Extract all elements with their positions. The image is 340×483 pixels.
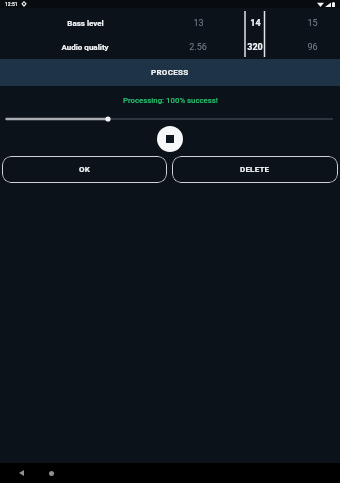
button[interactable]: 13 (178, 17, 218, 29)
button[interactable]: 14 (235, 17, 275, 29)
staticText: 96 (307, 42, 318, 53)
button[interactable]: Bass level (55, 17, 115, 29)
staticText: 14 (250, 18, 261, 29)
staticText: DELETE (240, 165, 270, 174)
button[interactable]: PROCESS (0, 59, 340, 86)
staticText: 12:51 (5, 1, 18, 7)
button[interactable]: 320 (235, 41, 275, 53)
staticText: 320 (247, 42, 263, 53)
staticText: PROCESS (151, 68, 189, 77)
staticText: 15 (307, 18, 318, 29)
button[interactable]: 15 (292, 17, 332, 29)
button[interactable]: 2.56 (178, 41, 218, 53)
staticText: 13 (193, 18, 204, 29)
button[interactable]: 96 (292, 41, 332, 53)
button[interactable]: DELETE (172, 156, 338, 183)
staticText: Processing: 100% success! (123, 96, 218, 105)
staticText: OK (79, 165, 91, 174)
staticText: 2.56 (189, 42, 207, 53)
button[interactable]: Home (43, 465, 59, 481)
button[interactable]: Stop (157, 126, 183, 152)
button[interactable]: OK (2, 156, 167, 183)
staticText: Bass level (67, 19, 104, 28)
staticText: Audio quality (61, 43, 109, 52)
button[interactable]: Back (13, 465, 29, 481)
button[interactable]: Audio quality (55, 41, 115, 53)
